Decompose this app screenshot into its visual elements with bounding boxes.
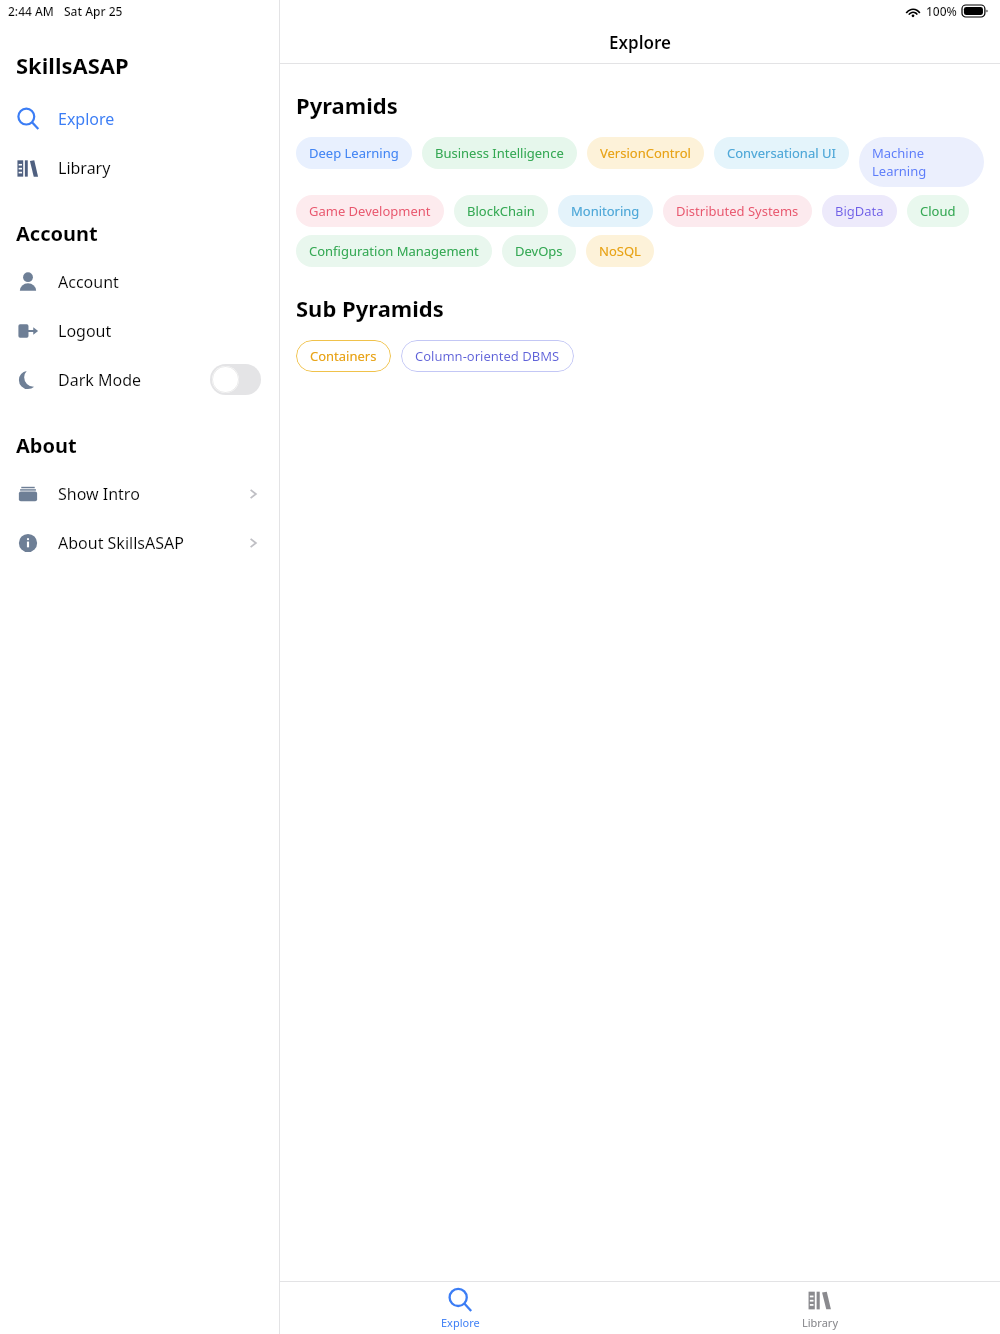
staticText: Explore: [441, 1315, 480, 1330]
button[interactable]: Game Development: [296, 195, 444, 227]
button[interactable]: BigData: [822, 195, 897, 227]
staticText: Deep Learning: [309, 144, 399, 162]
button[interactable]: VersionControl: [587, 137, 704, 169]
staticText: Distributed Systems: [676, 202, 799, 220]
staticText: 2:44 AM: [8, 3, 54, 19]
staticText: SkillsASAP: [16, 50, 129, 80]
button[interactable]: Column-oriented DBMS: [401, 340, 574, 372]
staticText: BlockChain: [467, 202, 535, 220]
button[interactable]: Account: [0, 257, 279, 306]
staticText: Sat Apr 25: [64, 3, 123, 19]
staticText: Pyramids: [296, 90, 398, 120]
staticText: Explore: [58, 108, 115, 130]
button[interactable]: Explore: [0, 94, 279, 143]
staticText: Library: [58, 157, 111, 179]
button[interactable]: Machine Learning: [859, 137, 984, 187]
button[interactable]: Library: [0, 143, 279, 192]
staticText: Logout: [58, 320, 112, 342]
button[interactable]: Logout: [0, 306, 279, 355]
button[interactable]: Distributed Systems: [663, 195, 812, 227]
staticText: Conversational UI: [727, 144, 836, 162]
button[interactable]: Cloud: [907, 195, 969, 227]
staticText: Game Development: [309, 202, 431, 220]
staticText: Business Intelligence: [435, 144, 564, 162]
staticText: About SkillsASAP: [58, 532, 184, 554]
staticText: Show Intro: [58, 483, 140, 505]
button[interactable]: Library: [640, 1282, 1000, 1334]
staticText: Configuration Management: [309, 242, 479, 260]
button[interactable]: NoSQL: [586, 235, 654, 267]
button[interactable]: About SkillsASAP: [0, 518, 279, 567]
staticText: DevOps: [515, 242, 563, 260]
staticText: Account: [58, 271, 119, 293]
button[interactable]: Dark Mode toggle: [210, 364, 261, 395]
button[interactable]: Business Intelligence: [422, 137, 577, 169]
staticText: About: [16, 432, 77, 459]
staticText: Machine Learning: [872, 144, 971, 180]
button[interactable]: Explore: [280, 1282, 640, 1334]
button[interactable]: Show Intro: [0, 469, 279, 518]
button[interactable]: BlockChain: [454, 195, 548, 227]
staticText: Sub Pyramids: [296, 293, 444, 323]
staticText: VersionControl: [600, 144, 691, 162]
button[interactable]: Monitoring: [558, 195, 653, 227]
staticText: Account: [16, 220, 98, 247]
button[interactable]: Deep Learning: [296, 137, 412, 169]
button[interactable]: DevOps: [502, 235, 576, 267]
staticText: Dark Mode: [58, 369, 142, 391]
staticText: Library: [802, 1315, 839, 1330]
staticText: Column-oriented DBMS: [415, 347, 560, 365]
staticText: Cloud: [920, 202, 956, 220]
button[interactable]: Dark Mode: [0, 355, 279, 404]
button[interactable]: Conversational UI: [714, 137, 849, 169]
staticText: NoSQL: [599, 242, 641, 260]
button[interactable]: Containers: [296, 340, 391, 372]
staticText: Monitoring: [571, 202, 640, 220]
staticText: 100%: [926, 3, 957, 19]
staticText: Explore: [609, 31, 671, 54]
staticText: BigData: [835, 202, 884, 220]
button[interactable]: Configuration Management: [296, 235, 492, 267]
staticText: Containers: [310, 347, 377, 365]
